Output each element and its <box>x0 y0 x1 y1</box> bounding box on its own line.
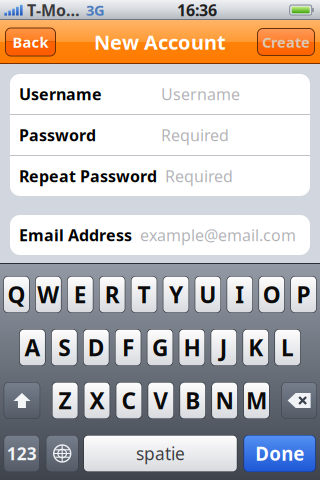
staticText: B <box>185 385 200 415</box>
staticText: K <box>248 332 263 362</box>
staticText: E <box>74 279 87 309</box>
staticText: C <box>121 385 136 415</box>
button[interactable]: Repeat Password <box>10 156 310 196</box>
staticText: Required <box>165 165 233 187</box>
staticText: A <box>24 332 40 362</box>
button[interactable]: C <box>116 382 142 419</box>
button[interactable]: B <box>180 382 206 419</box>
button[interactable]: Back <box>5 27 56 56</box>
staticText: W <box>37 279 59 309</box>
staticText: T-Mo… <box>27 0 80 21</box>
staticText: F <box>122 332 134 362</box>
button[interactable]: P <box>290 276 317 313</box>
staticText: New Account <box>94 29 226 55</box>
staticText: 16:36 <box>177 0 217 21</box>
button[interactable]: F <box>115 329 141 366</box>
button[interactable]: G <box>147 329 173 366</box>
staticText: I <box>235 279 244 309</box>
button[interactable]: Done <box>243 435 316 472</box>
staticText: example@email.com <box>140 224 296 246</box>
button[interactable]: U <box>195 276 221 313</box>
button[interactable]: S <box>51 329 77 366</box>
staticText: Z <box>59 385 72 415</box>
staticText: P <box>296 279 310 309</box>
button[interactable]: L <box>274 329 301 366</box>
button[interactable]: O <box>258 276 285 313</box>
staticText: Q <box>7 279 25 309</box>
staticText: R <box>105 279 120 309</box>
button[interactable]: Z <box>52 382 78 419</box>
button[interactable]: Y <box>163 276 189 313</box>
staticText: J <box>220 332 228 362</box>
button[interactable]: R <box>99 276 125 313</box>
button[interactable]: D <box>83 329 109 366</box>
button[interactable]: W <box>35 276 61 313</box>
button[interactable]: E <box>67 276 93 313</box>
button[interactable]: Delete <box>281 382 317 419</box>
staticText: Repeat Password <box>19 165 157 187</box>
staticText: Username <box>19 83 102 105</box>
staticText: H <box>183 332 200 362</box>
staticText: V <box>153 385 168 415</box>
staticText: U <box>199 279 216 309</box>
button[interactable]: Q <box>3 276 30 313</box>
staticText: S <box>58 332 70 362</box>
staticText: Username <box>161 83 240 105</box>
button[interactable]: Next keyboard <box>46 435 78 472</box>
button[interactable]: I <box>227 276 253 313</box>
button[interactable]: 123 <box>4 435 40 472</box>
staticText: O <box>263 279 281 309</box>
button[interactable]: Shift <box>4 382 40 419</box>
button[interactable]: X <box>84 382 110 419</box>
staticText: X <box>89 385 104 415</box>
button[interactable]: N <box>211 382 238 419</box>
button[interactable]: K <box>242 329 269 366</box>
staticText: G <box>152 332 168 362</box>
button[interactable]: Password <box>10 115 310 155</box>
button[interactable]: Username <box>10 74 310 114</box>
staticText: N <box>216 385 234 415</box>
staticText: Back <box>12 32 48 52</box>
staticText: Required <box>161 124 229 146</box>
staticText: Create <box>262 32 310 52</box>
staticText: 3G <box>86 0 105 20</box>
button[interactable]: T <box>131 276 157 313</box>
staticText: Email Address <box>19 224 132 246</box>
staticText: M <box>246 385 267 415</box>
staticText: spatie <box>136 442 185 465</box>
button[interactable]: M <box>243 382 270 419</box>
staticText: Done <box>255 441 304 466</box>
staticText: Password <box>19 124 96 146</box>
button[interactable]: Email Address <box>10 215 310 255</box>
button[interactable]: J <box>211 329 237 366</box>
staticText: L <box>281 332 294 362</box>
button[interactable]: H <box>179 329 205 366</box>
button[interactable]: Create <box>257 28 315 56</box>
staticText: T <box>137 279 150 309</box>
button[interactable]: V <box>148 382 174 419</box>
staticText: Y <box>169 279 183 309</box>
staticText: D <box>88 332 105 362</box>
button[interactable]: A <box>19 329 45 366</box>
button[interactable]: spatie <box>83 435 237 472</box>
staticText: 123 <box>7 442 37 465</box>
